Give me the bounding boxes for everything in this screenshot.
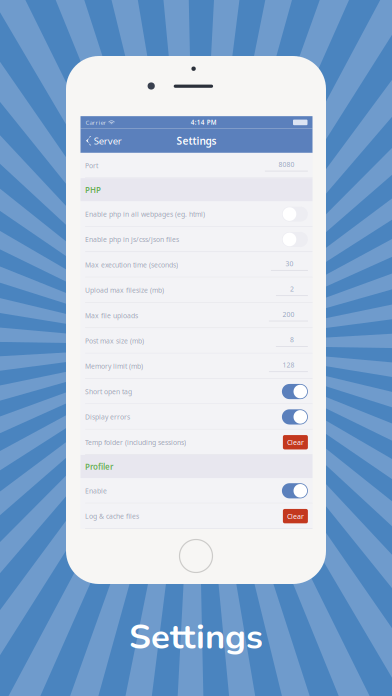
staticText: Temp folder (including sessions) bbox=[85, 438, 186, 447]
staticText: 2 bbox=[290, 284, 294, 294]
button[interactable]: Clear bbox=[283, 435, 308, 449]
staticText: 128 bbox=[282, 360, 294, 370]
button[interactable]: Memory limit (mb) bbox=[80, 353, 312, 379]
staticText: Carrier bbox=[85, 118, 106, 127]
staticText: Server bbox=[94, 134, 122, 147]
staticText: Post max size (mb) bbox=[85, 336, 144, 345]
staticText: Profiler bbox=[85, 461, 113, 472]
button[interactable]: Max execution time (seconds) bbox=[80, 252, 312, 277]
staticText: Port bbox=[85, 161, 98, 170]
button[interactable]: Port bbox=[80, 153, 312, 178]
staticText: 200 bbox=[282, 310, 294, 319]
button[interactable]: Server bbox=[80, 129, 130, 153]
button[interactable]: Max file uploads bbox=[80, 303, 312, 328]
staticText: PHP bbox=[85, 184, 101, 195]
staticText: 8 bbox=[290, 335, 294, 344]
button[interactable]: Clear bbox=[283, 509, 308, 523]
staticText: Clear bbox=[287, 437, 304, 447]
button[interactable]: Display errors bbox=[80, 404, 312, 430]
button[interactable]: Short open tag bbox=[80, 379, 312, 404]
button[interactable]: Enable php in all webpages (eg. html) bbox=[80, 201, 312, 227]
staticText: Enable php in all webpages (eg. html) bbox=[85, 209, 205, 219]
staticText: Short open tag bbox=[85, 387, 132, 396]
staticText: Enable php in js/css/json files bbox=[85, 235, 179, 244]
button[interactable]: Enable php in js/css/json files bbox=[80, 227, 312, 252]
staticText: Upload max filesize (mb) bbox=[85, 285, 164, 295]
staticText: Clear bbox=[287, 511, 304, 521]
button[interactable]: Enable bbox=[80, 478, 312, 503]
staticText: Memory limit (mb) bbox=[85, 362, 143, 371]
staticText: Settings bbox=[129, 613, 263, 661]
staticText: Enable bbox=[85, 486, 107, 495]
staticText: Max execution time (seconds) bbox=[85, 260, 178, 269]
staticText: 8080 bbox=[278, 160, 294, 169]
staticText: Log & cache files bbox=[85, 511, 139, 521]
staticText: 4:14 PM bbox=[191, 118, 217, 127]
button[interactable]: Upload max filesize (mb) bbox=[80, 277, 312, 303]
staticText: Max file uploads bbox=[85, 311, 138, 320]
staticText: Display errors bbox=[85, 412, 130, 422]
staticText: Settings bbox=[176, 134, 216, 148]
staticText: 30 bbox=[285, 259, 293, 268]
button[interactable]: Post max size (mb) bbox=[80, 328, 312, 354]
